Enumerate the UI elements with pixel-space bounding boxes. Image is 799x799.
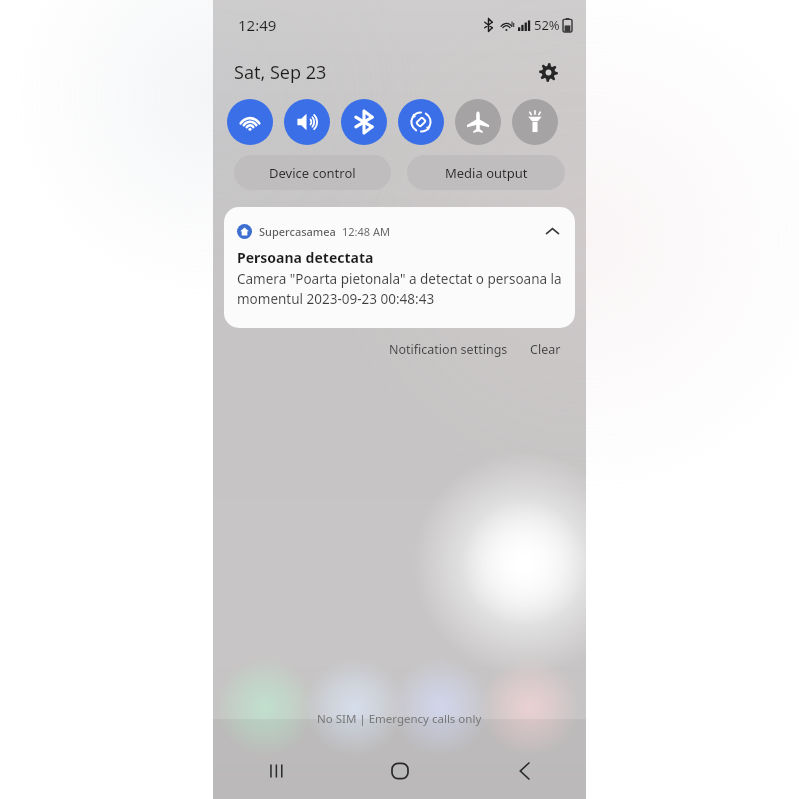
staticText: Clear (530, 341, 561, 358)
staticText: 52% (534, 16, 560, 34)
button[interactable]: Auto rotate (398, 99, 444, 145)
button[interactable]: Collapse notification (540, 219, 564, 243)
button[interactable]: Media output (407, 155, 565, 190)
staticText: Supercasamea (259, 224, 336, 239)
button[interactable]: Sound (284, 99, 330, 145)
button[interactable]: Device control (234, 155, 391, 190)
staticText: No SIM | Emergency calls only (317, 711, 482, 727)
staticText: 12:49 (238, 15, 277, 35)
staticText: Persoana detectata (237, 248, 374, 267)
button[interactable]: Notification settings (385, 337, 512, 362)
staticText: Notification settings (389, 341, 508, 358)
button[interactable]: Clear (526, 337, 565, 362)
button[interactable]: Back (462, 749, 586, 793)
button[interactable]: Flashlight (512, 99, 558, 145)
staticText: Device control (269, 164, 356, 182)
staticText: 12:48 AM (342, 224, 390, 239)
button[interactable]: Airplane mode (455, 99, 501, 145)
button[interactable]: Bluetooth (341, 99, 387, 145)
button[interactable]: Wi-Fi (227, 99, 273, 145)
staticText: Media output (445, 164, 528, 182)
staticText: momentul 2023-09-23 00:48:43 (237, 290, 435, 308)
button[interactable]: Recent apps (213, 749, 338, 793)
button[interactable]: Settings (534, 58, 562, 86)
button[interactable]: Home (338, 749, 462, 793)
button[interactable]: Supercasamea (224, 207, 575, 328)
staticText: Camera "Poarta pietonala" a detectat o p… (237, 270, 562, 288)
staticText: Sat, Sep 23 (234, 60, 327, 85)
